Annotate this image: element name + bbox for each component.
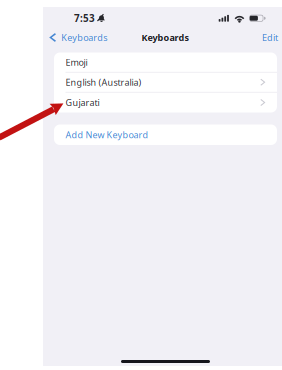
staticText: Edit	[262, 31, 278, 44]
button[interactable]: Keyboards	[43, 27, 107, 48]
staticText: Keyboards	[141, 31, 189, 44]
button[interactable]: English (Australia)	[54, 72, 277, 92]
staticText: Emoji	[65, 56, 87, 68]
staticText: Keyboards	[61, 31, 107, 44]
staticText: Gujarati	[65, 96, 99, 109]
button[interactable]: Edit	[262, 27, 282, 48]
staticText: English (Australia)	[65, 76, 141, 88]
staticText: 7:53	[74, 11, 95, 25]
staticText: Add New Keyboard	[65, 129, 148, 141]
button[interactable]: Gujarati	[54, 92, 277, 112]
button[interactable]: Emoji	[54, 52, 277, 72]
button[interactable]: Add New Keyboard	[54, 124, 277, 145]
